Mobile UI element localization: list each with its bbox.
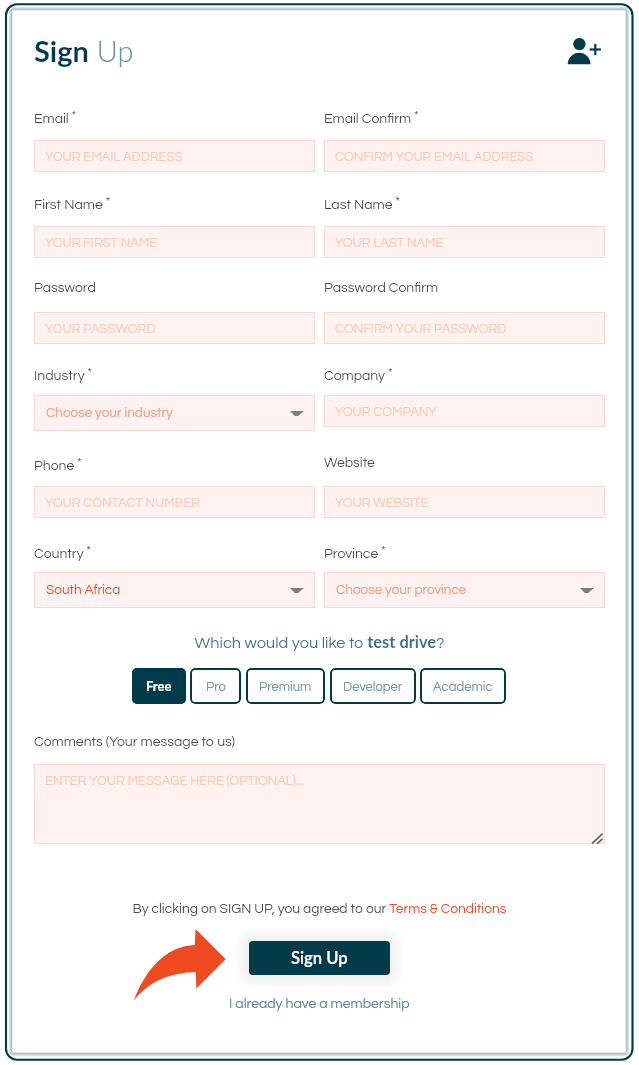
- staticText: Premium: [259, 680, 312, 693]
- staticText: First Name *: [34, 195, 111, 212]
- staticText: CONFIRM YOUR EMAIL ADDRESS: [335, 150, 534, 163]
- button[interactable]: YOUR COMPANY: [324, 395, 605, 427]
- staticText: Sign Up: [291, 948, 348, 968]
- staticText: YOUR LAST NAME: [335, 236, 444, 249]
- button[interactable]: Academic: [420, 668, 506, 704]
- staticText: Choose your industry: [46, 406, 173, 420]
- staticText: South Africa: [46, 583, 121, 597]
- staticText: YOUR WEBSITE: [335, 496, 429, 509]
- staticText: Sign Up: [34, 33, 134, 68]
- staticText: Email Confirm *: [324, 109, 419, 126]
- staticText: Developer: [343, 680, 403, 693]
- button[interactable]: Sign Up: [249, 941, 390, 975]
- button[interactable]: Premium: [246, 668, 325, 704]
- staticText: YOUR FIRST NAME: [45, 236, 158, 249]
- staticText: Which would you like to test drive?: [0, 632, 639, 652]
- button[interactable]: Add account: [559, 26, 603, 70]
- button[interactable]: ENTER YOUR MESSAGE HERE (OPTIONAL)...: [34, 764, 605, 844]
- button[interactable]: YOUR LAST NAME: [324, 226, 605, 258]
- button[interactable]: Choose your province: [324, 572, 605, 608]
- staticText: YOUR COMPANY: [335, 405, 437, 418]
- staticText: CONFIRM YOUR PASSWORD: [335, 322, 507, 335]
- staticText: Province *: [324, 544, 386, 561]
- staticText: YOUR CONTACT NUMBER: [45, 496, 201, 509]
- staticText: Password Confirm: [324, 281, 439, 295]
- staticText: Comments (Your message to us): [34, 735, 235, 749]
- staticText: By clicking on SIGN UP, you agreed to ou…: [0, 902, 639, 916]
- button[interactable]: Free: [132, 668, 186, 704]
- staticText: Email *: [34, 109, 77, 126]
- staticText: Pro: [206, 680, 226, 693]
- button[interactable]: Pro: [190, 668, 241, 704]
- staticText: Country *: [34, 544, 92, 561]
- button[interactable]: Choose your industry: [34, 395, 315, 431]
- button[interactable]: YOUR FIRST NAME: [34, 226, 315, 258]
- staticText: YOUR PASSWORD: [45, 322, 156, 335]
- button[interactable]: South Africa: [34, 572, 315, 608]
- button[interactable]: YOUR CONTACT NUMBER: [34, 486, 315, 518]
- staticText: Academic: [433, 680, 493, 693]
- staticText: Industry *: [34, 366, 93, 383]
- button[interactable]: YOUR PASSWORD: [34, 312, 315, 344]
- button[interactable]: Developer: [330, 668, 416, 704]
- staticText: Phone *: [34, 456, 82, 473]
- button[interactable]: YOUR WEBSITE: [324, 486, 605, 518]
- staticText: YOUR EMAIL ADDRESS: [45, 150, 183, 163]
- staticText: Company *: [324, 366, 393, 383]
- staticText: Choose your province: [336, 583, 467, 597]
- staticText: ENTER YOUR MESSAGE HERE (OPTIONAL)...: [45, 774, 304, 787]
- staticText: Website: [324, 456, 375, 470]
- button[interactable]: YOUR EMAIL ADDRESS: [34, 140, 315, 172]
- staticText: Free: [146, 678, 172, 694]
- button[interactable]: CONFIRM YOUR EMAIL ADDRESS: [324, 140, 605, 172]
- staticText: Password: [34, 281, 96, 295]
- button[interactable]: I already have a membership: [223, 994, 416, 1014]
- button[interactable]: CONFIRM YOUR PASSWORD: [324, 312, 605, 344]
- staticText: Last Name *: [324, 195, 401, 212]
